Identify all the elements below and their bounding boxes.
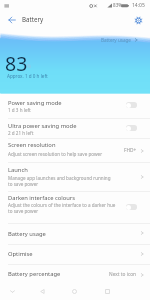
- staticText: Screen resolution: [8, 141, 56, 149]
- button[interactable]: Screen resolution: [0, 138, 150, 162]
- staticText: Darken interface colours: [8, 194, 76, 202]
- button[interactable]: Back: [2, 11, 21, 29]
- staticText: Battery usage: [8, 230, 46, 238]
- staticText: Battery percentage: [8, 270, 61, 278]
- staticText: Adjust screen resolution to help save po…: [8, 151, 112, 157]
- button[interactable]: Recent apps: [95, 283, 119, 300]
- button[interactable]: Back: [30, 283, 54, 300]
- staticText: Optimise: [8, 250, 33, 258]
- button[interactable]: Ultra power saving mode: [0, 118, 150, 138]
- button[interactable]: Battery percentage: [0, 264, 150, 284]
- staticText: 14:05: [132, 2, 145, 9]
- button[interactable]: Optimise: [0, 244, 150, 264]
- staticText: 83: [5, 50, 28, 77]
- button[interactable]: Battery usage: [101, 37, 139, 43]
- staticText: Ultra power saving mode: [8, 122, 77, 130]
- staticText: 2 d 21 h left: [8, 130, 122, 136]
- button[interactable]: Battery usage: [0, 223, 150, 244]
- staticText: FHD+: [124, 147, 137, 154]
- staticText: Next to icon: [109, 271, 137, 278]
- button[interactable]: Darken interface colours: [0, 191, 150, 223]
- button[interactable]: Home: [62, 283, 86, 300]
- staticText: Manage app launches and background runni…: [8, 175, 112, 187]
- button[interactable]: Power saving mode: [0, 93, 150, 118]
- staticText: Adjust the colours of the interface to a…: [8, 202, 120, 214]
- staticText: 1 d 3 h left: [8, 107, 122, 113]
- staticText: Power saving mode: [8, 99, 62, 107]
- button[interactable]: Settings: [130, 12, 147, 29]
- staticText: Launch: [8, 166, 28, 174]
- staticText: Battery: [22, 15, 44, 23]
- staticText: Battery usage: [101, 37, 131, 43]
- staticText: Approx. 1 d 0 h left: [7, 73, 48, 79]
- staticText: 83%: [113, 2, 123, 8]
- button[interactable]: Launch: [0, 162, 150, 191]
- staticText: %: [27, 63, 31, 70]
